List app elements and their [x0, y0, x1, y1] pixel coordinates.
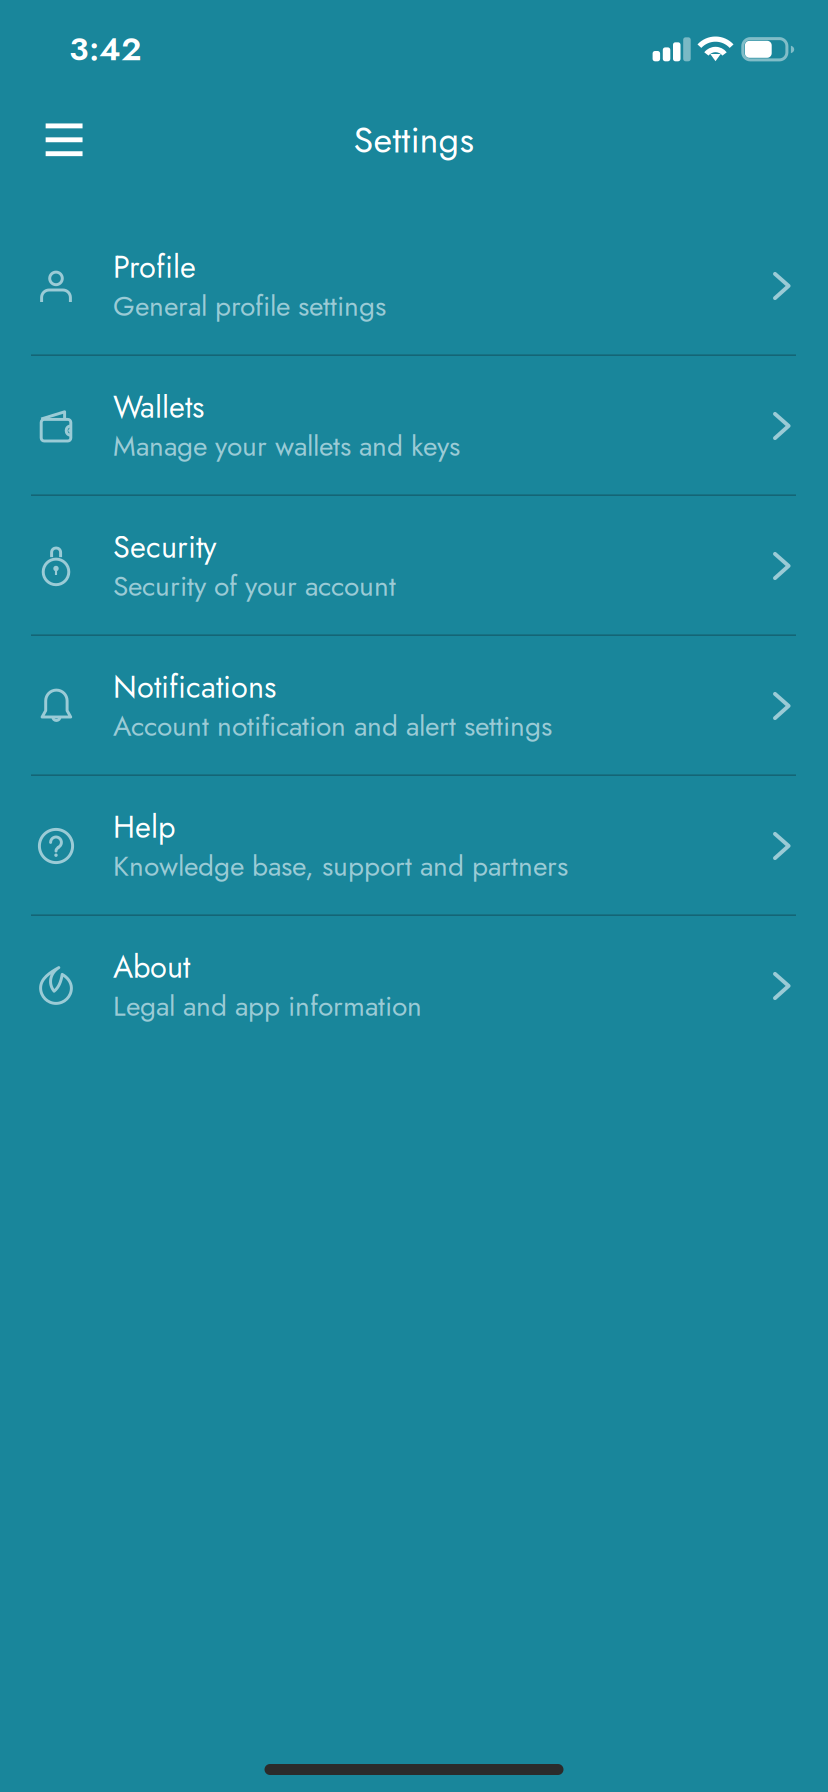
- staticText: About: [113, 945, 190, 989]
- staticText: General profile settings: [113, 286, 386, 326]
- button[interactable]: Help: [0, 776, 828, 916]
- staticText: Account notification and alert settings: [113, 706, 552, 746]
- staticText: Security: [113, 525, 216, 569]
- button[interactable]: About: [0, 916, 828, 1056]
- staticText: Settings: [353, 114, 474, 166]
- staticText: Security of your account: [113, 566, 396, 606]
- staticText: Help: [113, 805, 175, 849]
- staticText: Profile: [113, 245, 196, 289]
- button[interactable]: Security: [0, 496, 828, 636]
- staticText: 3:42: [69, 25, 142, 73]
- button[interactable]: Profile: [0, 216, 828, 356]
- staticText: Knowledge base, support and partners: [113, 846, 568, 886]
- staticText: Wallets: [113, 385, 204, 429]
- button[interactable]: Menu: [30, 108, 98, 172]
- staticText: Legal and app information: [113, 986, 422, 1026]
- button[interactable]: Wallets: [0, 356, 828, 496]
- staticText: Manage your wallets and keys: [113, 426, 460, 466]
- button[interactable]: Notifications: [0, 636, 828, 776]
- staticText: Notifications: [113, 665, 276, 709]
